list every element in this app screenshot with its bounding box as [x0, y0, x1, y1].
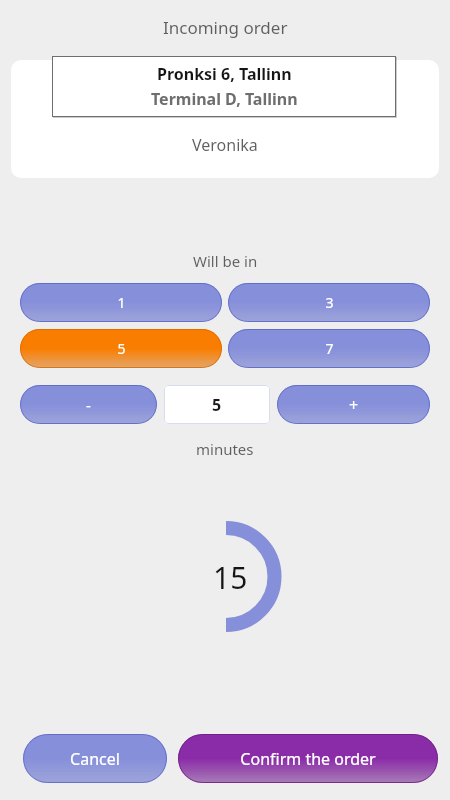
staticText: +	[349, 394, 359, 416]
staticText: Veronika	[192, 134, 258, 156]
staticText: Pronksi 6, Tallinn	[157, 63, 292, 85]
button[interactable]: 3	[228, 283, 430, 322]
button[interactable]: 1	[20, 283, 222, 322]
button[interactable]: 5	[164, 385, 270, 424]
staticText: 3	[325, 293, 334, 312]
button[interactable]: 5	[20, 329, 222, 368]
button[interactable]: 7	[228, 329, 430, 368]
staticText: -	[86, 395, 91, 415]
staticText: 1	[117, 293, 126, 312]
staticText: 5	[117, 339, 126, 358]
staticText: Incoming order	[163, 16, 288, 39]
button[interactable]: Increase minutes	[277, 385, 430, 424]
staticText: 5	[212, 394, 222, 416]
staticText: minutes	[196, 439, 254, 459]
staticText: Will be in	[193, 251, 258, 271]
staticText: Terminal D, Tallinn	[151, 88, 298, 110]
button[interactable]: Confirm the order	[178, 734, 438, 783]
staticText: 7	[325, 339, 334, 358]
button[interactable]: Cancel	[23, 734, 167, 783]
staticText: 15	[213, 557, 248, 598]
button[interactable]: Decrease minutes	[20, 385, 157, 424]
button[interactable]: Pronksi 6, Tallinn	[52, 56, 396, 117]
staticText: Confirm the order	[240, 748, 376, 770]
staticText: Cancel	[70, 748, 120, 770]
